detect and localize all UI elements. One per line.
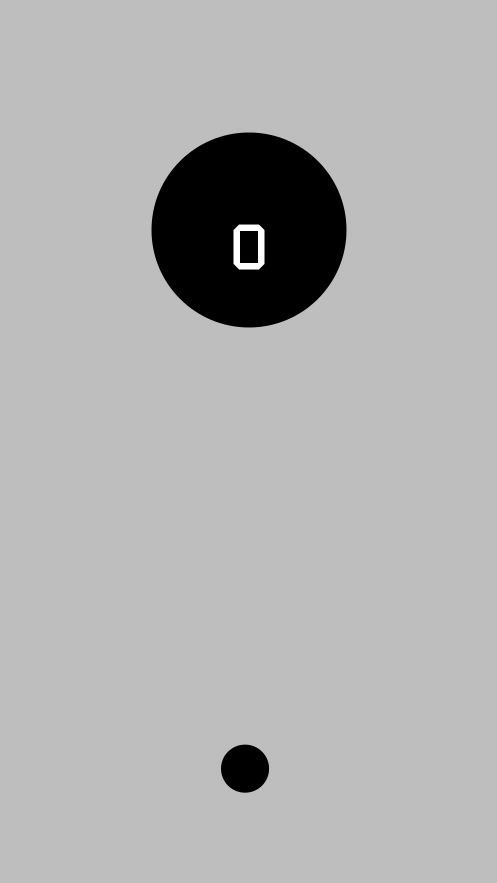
button[interactable]: Profile bbox=[151, 132, 346, 327]
button[interactable]: Record bbox=[224, 744, 272, 792]
